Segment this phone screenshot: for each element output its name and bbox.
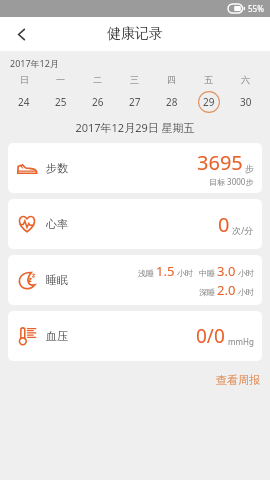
- staticText: 血压: [46, 329, 68, 343]
- staticText: 3695: [197, 149, 243, 176]
- staticText: 26: [92, 95, 104, 109]
- staticText: 查看周报: [216, 373, 260, 387]
- staticText: 25: [55, 95, 67, 109]
- staticText: 1.5: [156, 262, 175, 280]
- button[interactable]: 27: [116, 90, 153, 114]
- button[interactable]: 心率: [8, 199, 262, 249]
- staticText: mmHg: [228, 336, 254, 347]
- staticText: 30: [240, 95, 252, 109]
- staticText: 29: [203, 95, 215, 109]
- button[interactable]: 血压: [8, 311, 262, 361]
- staticText: 步数: [46, 161, 68, 175]
- staticText: 睡眠: [46, 273, 68, 287]
- staticText: 0/0: [196, 323, 225, 349]
- staticText: 一: [56, 74, 65, 85]
- button[interactable]: 25: [42, 90, 79, 114]
- button[interactable]: 24: [6, 90, 42, 114]
- staticText: 步: [245, 163, 254, 174]
- staticText: 次/分: [232, 224, 254, 236]
- staticText: 55%: [248, 3, 264, 14]
- staticText: 中睡: [199, 268, 215, 278]
- staticText: 27: [129, 95, 141, 109]
- staticText: 二: [93, 74, 102, 85]
- button[interactable]: 26: [79, 90, 116, 114]
- staticText: 小时: [238, 287, 254, 297]
- staticText: 三: [130, 74, 139, 85]
- staticText: 24: [18, 95, 30, 109]
- button[interactable]: 睡眠: [8, 255, 262, 305]
- staticText: 0: [218, 211, 230, 238]
- staticText: 四: [167, 74, 176, 85]
- staticText: 健康记录: [107, 25, 163, 43]
- button[interactable]: 29: [190, 90, 227, 114]
- staticText: 日: [20, 74, 29, 85]
- staticText: 浅睡: [138, 268, 154, 278]
- staticText: 小时: [177, 268, 193, 278]
- staticText: 2017年12月: [10, 57, 59, 69]
- button[interactable]: 查看周报: [208, 371, 270, 389]
- staticText: 2017年12月29日 星期五: [75, 120, 195, 135]
- staticText: 深睡: [199, 287, 215, 297]
- staticText: 28: [166, 95, 178, 109]
- staticText: 小时: [238, 268, 254, 278]
- button[interactable]: Back: [4, 17, 38, 51]
- staticText: 2.0: [217, 281, 236, 299]
- staticText: 心率: [46, 217, 68, 231]
- button[interactable]: 30: [227, 90, 264, 114]
- staticText: 3.0: [217, 262, 236, 280]
- staticText: 目标 3000步: [209, 176, 254, 187]
- button[interactable]: 步数: [8, 143, 262, 193]
- staticText: 六: [241, 74, 250, 85]
- button[interactable]: 28: [153, 90, 190, 114]
- staticText: 五: [204, 74, 213, 85]
